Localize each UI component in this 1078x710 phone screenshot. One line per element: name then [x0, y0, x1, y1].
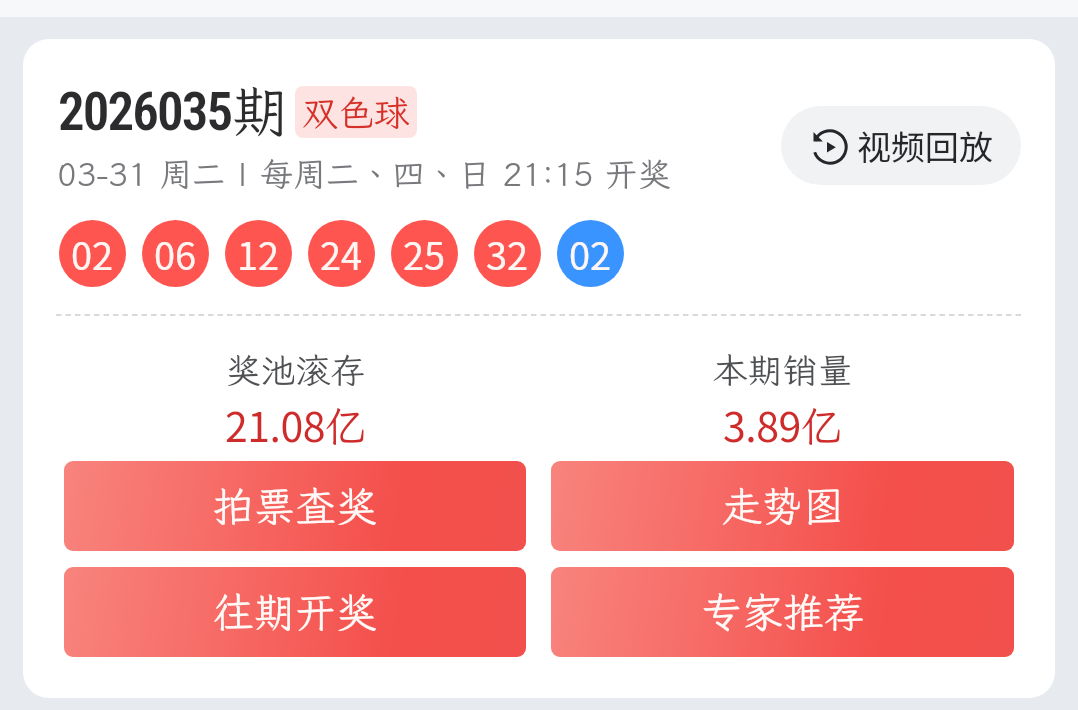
staticText: 02 [71, 226, 114, 281]
button[interactable]: 专家推荐 [551, 567, 1014, 657]
staticText: 亿 [325, 399, 366, 453]
staticText: 专家推荐 [701, 585, 865, 639]
button[interactable]: 拍票查奖 [64, 461, 526, 551]
button[interactable]: Video replay [781, 106, 1021, 185]
staticText: 12 [237, 226, 280, 281]
staticText: 期 [232, 73, 289, 148]
staticText: 25 [403, 226, 446, 281]
staticText: 3.89 [723, 394, 801, 453]
other: Video replay [810, 126, 850, 166]
staticText: 06 [154, 226, 197, 281]
button[interactable]: 往期开奖 [64, 567, 526, 657]
staticText: 32 [486, 226, 529, 281]
staticText: 走势图 [721, 479, 844, 533]
button[interactable]: 走势图 [551, 461, 1014, 551]
staticText: 21.08 [225, 394, 325, 453]
staticText: 2026035 [58, 81, 232, 143]
staticText: 双色球 [302, 89, 411, 136]
staticText: 奖池滚存 [225, 347, 366, 393]
staticText: 本期销量 [712, 347, 853, 393]
staticText: 03-31 周二 | 每周二、四、日 21:15 开奖 [57, 152, 671, 195]
staticText: 视频回放 [857, 121, 993, 170]
staticText: 往期开奖 [213, 585, 377, 639]
staticText: 亿 [801, 399, 842, 453]
staticText: 拍票查奖 [213, 479, 377, 533]
staticText: 02 [569, 226, 612, 281]
staticText: 24 [320, 226, 363, 281]
